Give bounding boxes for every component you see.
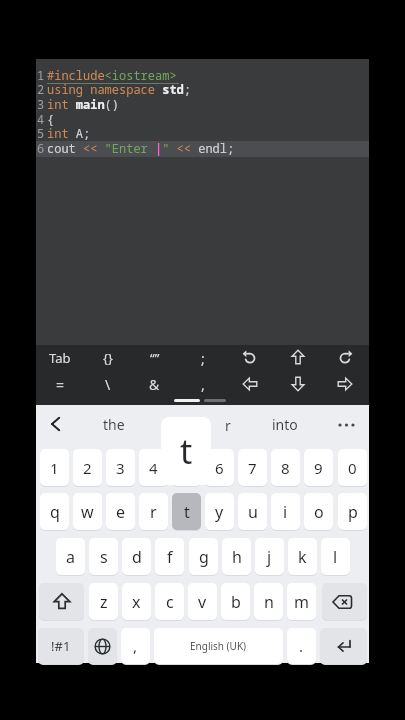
staticText: h (232, 546, 242, 568)
button[interactable]: into (255, 411, 315, 437)
button[interactable]: w (73, 493, 102, 530)
staticText: 1 (50, 458, 59, 478)
button[interactable]: 9 (304, 449, 333, 486)
staticText: t (180, 428, 193, 474)
button[interactable]: ; (179, 345, 226, 371)
button[interactable]: Tab (36, 345, 84, 371)
staticText: \ (105, 375, 111, 394)
button[interactable]: b (221, 583, 250, 620)
button[interactable]: 3 (106, 449, 135, 486)
button[interactable] (154, 628, 283, 664)
staticText: int A; (47, 125, 91, 141)
button[interactable]: z (89, 583, 118, 620)
staticText: r (150, 501, 157, 523)
button[interactable]: 2 (73, 449, 102, 486)
staticText: i (283, 501, 288, 523)
button[interactable]: n (254, 583, 283, 620)
staticText: o (314, 501, 324, 523)
staticText: z (100, 591, 108, 613)
button[interactable]: d (122, 538, 151, 575)
staticText: w (81, 501, 94, 523)
button[interactable]: 0 (338, 449, 367, 486)
staticText: l (333, 546, 338, 568)
button[interactable]: o (304, 493, 333, 530)
staticText: 5 (37, 125, 45, 141)
staticText: 7 (248, 458, 257, 478)
staticText: {} (103, 349, 113, 367)
button[interactable]: q (40, 493, 69, 530)
staticText: g (199, 546, 209, 568)
button[interactable]: 6 (205, 449, 234, 486)
staticText: 1 (37, 67, 45, 83)
staticText: 6 (37, 140, 45, 156)
button[interactable]: v (188, 583, 217, 620)
button[interactable] (320, 628, 367, 664)
button[interactable] (336, 417, 360, 431)
button[interactable]: c (155, 583, 184, 620)
button[interactable]: m (287, 583, 316, 620)
button[interactable]: s (89, 538, 118, 575)
button[interactable]: y (205, 493, 234, 530)
staticText: y (215, 501, 224, 523)
button[interactable]: 5 (172, 449, 201, 486)
button[interactable]: the (84, 411, 144, 437)
staticText: { (47, 111, 55, 127)
button[interactable]: !#1 (38, 628, 84, 664)
staticText: 6 (215, 458, 224, 478)
button[interactable]: 4 (139, 449, 168, 486)
staticText: v (198, 591, 207, 613)
button[interactable]: {} (84, 345, 131, 371)
staticText: 9 (314, 458, 323, 478)
staticText: cout << "Enter |" << endl; (47, 140, 235, 156)
button[interactable]: , (121, 628, 150, 664)
button[interactable]: t (172, 493, 201, 530)
staticText: !#1 (51, 637, 71, 655)
staticText: j (267, 546, 272, 568)
staticText: d (132, 546, 142, 568)
staticText: , (133, 636, 138, 656)
staticText: 2 (83, 458, 92, 478)
button[interactable]: e (106, 493, 135, 530)
button[interactable]: 1 (40, 449, 69, 486)
button[interactable]: p (338, 493, 367, 530)
button[interactable]: = (36, 371, 84, 397)
button[interactable]: \ (84, 371, 131, 397)
button[interactable]: u (238, 493, 267, 530)
button[interactable]: l (321, 538, 350, 575)
button[interactable] (88, 628, 117, 664)
staticText: = (56, 375, 65, 394)
button[interactable]: j (255, 538, 284, 575)
staticText: into (272, 415, 298, 434)
staticText: e (116, 501, 126, 523)
button[interactable] (49, 416, 63, 432)
staticText: using namespace std; (47, 81, 192, 97)
button[interactable]: i (271, 493, 300, 530)
button[interactable]: . (287, 628, 316, 664)
button[interactable]: k (288, 538, 317, 575)
staticText: 0 (348, 458, 357, 478)
button[interactable]: f (155, 538, 184, 575)
button[interactable]: a (56, 538, 85, 575)
button[interactable]: h (222, 538, 251, 575)
button[interactable]: x (122, 583, 151, 620)
staticText: 4 (149, 458, 158, 478)
staticText: 3 (37, 96, 45, 112)
staticText: b (231, 591, 241, 613)
button[interactable]: g (189, 538, 218, 575)
staticText: m (294, 591, 309, 613)
button[interactable]: “” (131, 345, 178, 371)
staticText: t (184, 501, 190, 523)
button[interactable]: 8 (271, 449, 300, 486)
button[interactable] (322, 583, 367, 620)
staticText: q (50, 501, 60, 523)
staticText: 2 (37, 81, 45, 97)
staticText: ; (201, 349, 205, 368)
button[interactable]: , (179, 371, 226, 397)
staticText: . (299, 636, 304, 656)
staticText: s (100, 546, 108, 568)
button[interactable] (39, 583, 84, 620)
button[interactable]: 7 (238, 449, 267, 486)
staticText: #include<iostream> (47, 67, 177, 83)
button[interactable]: & (131, 371, 178, 397)
button[interactable]: r (139, 493, 168, 530)
